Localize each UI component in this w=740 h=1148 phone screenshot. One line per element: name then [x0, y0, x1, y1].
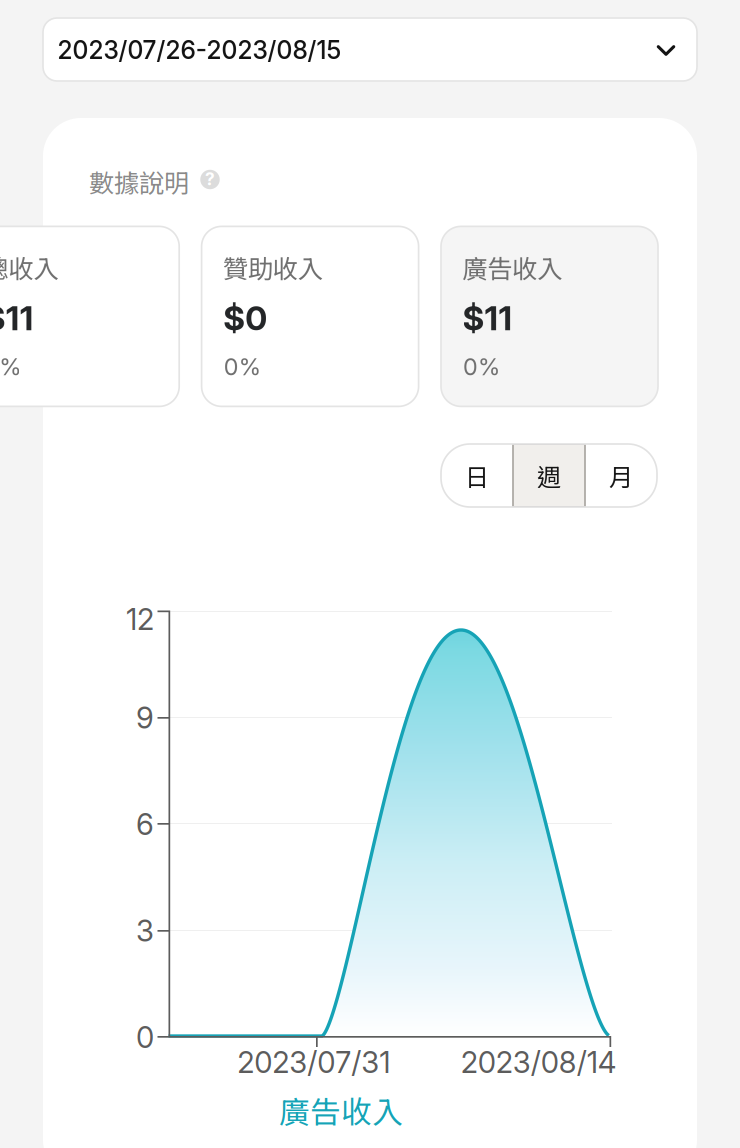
staticText: 2023/07/26-2023/08/15	[57, 35, 341, 65]
staticText: 0	[136, 1020, 154, 1055]
staticText: 總收入	[0, 249, 58, 285]
staticText: $0	[223, 298, 267, 338]
staticText: $11	[463, 298, 513, 338]
button[interactable]: 廣告收入	[441, 226, 658, 406]
button[interactable]: 日	[441, 444, 513, 507]
staticText: 9	[136, 700, 154, 736]
button[interactable]: 2023/07/26-2023/08/15	[43, 18, 697, 81]
staticText: 週	[537, 458, 561, 493]
button[interactable]: 贊助收入	[202, 226, 419, 406]
staticText: $11	[0, 298, 34, 338]
staticText: 6	[136, 806, 154, 842]
button[interactable]: 週	[513, 444, 585, 507]
staticText: 日	[465, 458, 489, 493]
staticText: 2023/07/31	[237, 1045, 390, 1080]
staticText: 數據說明	[89, 163, 189, 200]
staticText: 0%	[224, 353, 261, 381]
staticText: 3	[136, 913, 154, 949]
button[interactable]: 月	[585, 444, 657, 507]
staticText: 贊助收入	[223, 249, 323, 285]
staticText: 月	[609, 458, 633, 493]
button[interactable]: 說明	[198, 167, 222, 191]
staticText: ?	[205, 168, 215, 189]
staticText: 2023/08/14	[461, 1045, 617, 1080]
staticText: 廣告收入	[279, 1088, 403, 1132]
staticText: 0%	[463, 353, 500, 381]
button[interactable]: 廣告收入	[279, 1088, 419, 1134]
staticText: 0%	[0, 353, 21, 381]
staticText: 廣告收入	[462, 249, 562, 285]
button[interactable]: 總收入	[0, 226, 179, 406]
staticText: 12	[126, 602, 154, 637]
